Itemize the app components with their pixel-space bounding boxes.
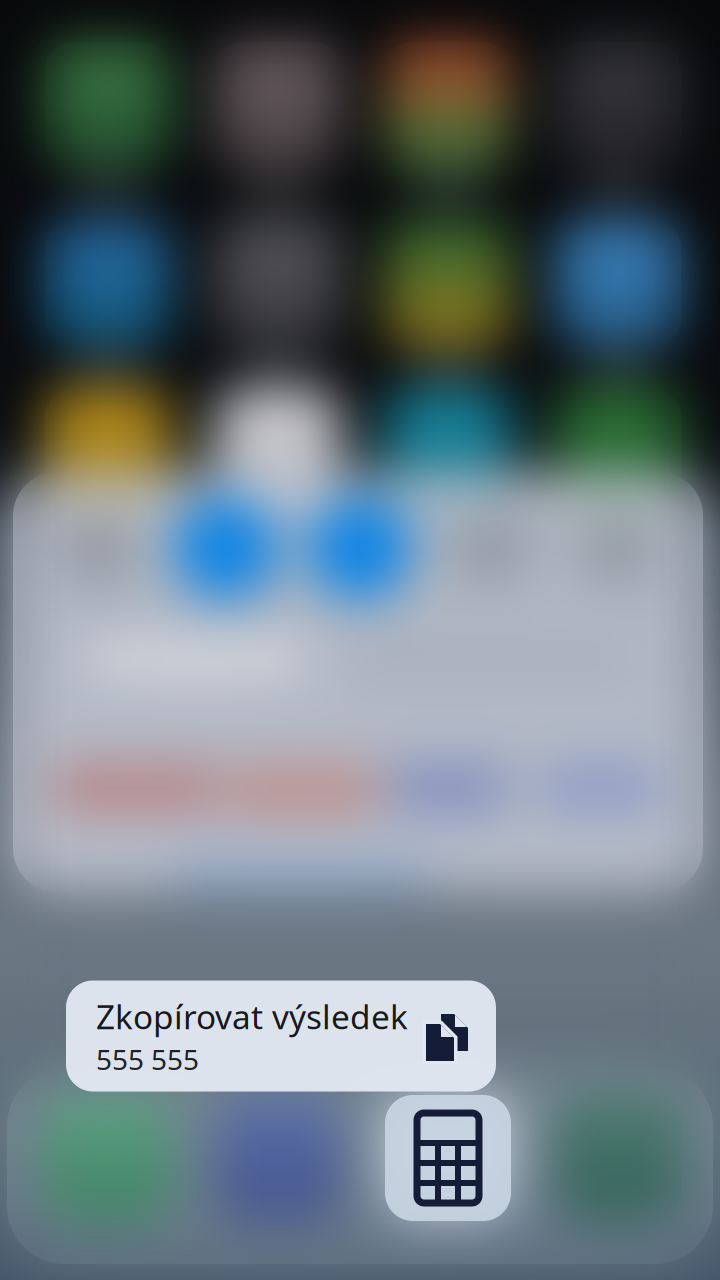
- staticText: 555 555: [96, 1040, 199, 1078]
- button[interactable]: Calculator: [385, 1095, 511, 1221]
- staticText: Zkopírovat výsledek: [96, 994, 408, 1039]
- button[interactable]: Zkopírovat výsledek: [66, 980, 496, 1091]
